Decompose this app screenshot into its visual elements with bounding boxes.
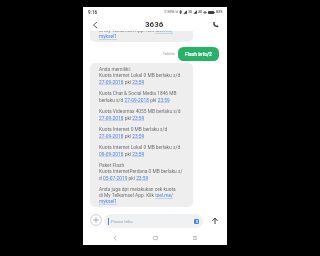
staticText: Paket Flash (99, 163, 125, 169)
button[interactable]: Back (107, 230, 123, 245)
staticText: di My Telkomsel App. Klik tsel.me/ (99, 193, 174, 199)
button[interactable]: Home (147, 230, 163, 245)
staticText: Kuota Chat & Social Media 1846 MB berlak… (99, 91, 185, 103)
staticText: Kuota Internet 0 MB berlaku s/d 27-09-20… (99, 127, 185, 139)
button[interactable]: Back (88, 18, 101, 31)
staticText: 1 (196, 220, 198, 224)
staticText: 9:16 (88, 10, 98, 15)
staticText: myksel1 (99, 34, 117, 40)
button[interactable]: Pesan teks. (104, 214, 203, 228)
button[interactable]: Anda memiliki: (90, 63, 193, 207)
button[interactable]: Call (209, 18, 222, 31)
staticText: Anda memiliki: (99, 67, 131, 73)
staticText: 3636 (145, 20, 164, 29)
staticText: Kuota InternetPerdana 0 MB berlaku s/d 0… (99, 169, 185, 181)
button[interactable]: Send (208, 214, 222, 228)
staticText: 31HKB/d (164, 10, 178, 14)
staticText: Anda juga dpt melakukan cek kuota (99, 187, 176, 193)
staticText: 83% (216, 10, 223, 14)
staticText: 4G (198, 10, 202, 14)
staticText: Kuota Videomax 4055 MB berlaku s/d 27-09… (99, 109, 185, 121)
button[interactable]: Add attachment (89, 213, 103, 227)
staticText: Pesan teks. (111, 219, 134, 224)
staticText: myksel1 (99, 199, 117, 205)
button[interactable]: Anda juga dpt melakukan cek kuota (90, 31, 193, 42)
button[interactable]: Flash info/2 (178, 47, 219, 61)
staticText: Terkirim (163, 52, 175, 56)
staticText: Kuota Internet Lokal 0 MB berlaku s/d 27… (99, 73, 185, 85)
staticText: Flash info/2 (185, 51, 212, 57)
staticText: 3G (188, 10, 192, 14)
button[interactable]: Recents (187, 230, 203, 245)
staticText: Kuota Internet Lokal 0 MB berlaku s/d 09… (99, 145, 185, 157)
staticText: di My Telkomsel App. Klik tsel.me/ (99, 31, 174, 34)
